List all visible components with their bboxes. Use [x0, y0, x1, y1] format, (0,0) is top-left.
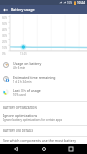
staticText: 1 d 2 h 34 min [13, 80, 32, 84]
staticText: Estimated time remaining [13, 75, 56, 80]
staticText: 0% [2, 52, 6, 56]
staticText: BATTERY USE DETAILS [3, 129, 34, 133]
staticText: 10% used [13, 93, 26, 97]
staticText: 50% [2, 22, 8, 26]
staticText: Last 3 h of usage [13, 88, 41, 93]
staticText: BATTERY OPTIMIZATION [3, 106, 37, 110]
button[interactable]: Back [5, 144, 27, 154]
staticText: 10:24 [77, 1, 86, 5]
button[interactable]: Estimated time remaining [0, 72, 87, 86]
staticText: See which components use the most batter… [3, 138, 76, 143]
staticText: 20% [2, 40, 8, 44]
staticText: 13:25 [20, 52, 27, 56]
button[interactable]: See which components use the most batter… [0, 138, 87, 144]
staticText: Battery usage [11, 7, 35, 12]
button[interactable]: Usage on battery [0, 58, 87, 72]
button[interactable]: Recent apps [60, 144, 82, 154]
staticText: 10% [2, 46, 8, 50]
staticText: 60% [2, 16, 8, 20]
button[interactable]: Ignore optimizations [0, 113, 87, 124]
staticText: 40% [2, 28, 8, 32]
button[interactable]: Home [33, 144, 55, 154]
staticText: Usage on battery [13, 61, 42, 66]
button[interactable]: Navigate up [0, 5, 10, 14]
staticText: 30% [2, 34, 8, 38]
button[interactable]: Last 3 h of usage [0, 85, 87, 99]
staticText: Ignore optimizations [3, 113, 38, 118]
staticText: 10% [67, 1, 73, 5]
staticText: 4 h 6 min [13, 66, 26, 70]
staticText: Ignore battery optimizations for certain… [3, 118, 62, 122]
